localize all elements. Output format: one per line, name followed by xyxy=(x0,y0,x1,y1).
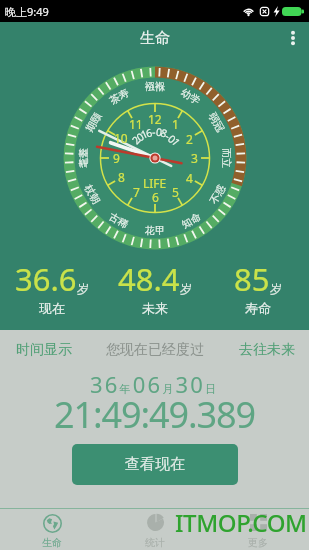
staticText: 1 xyxy=(169,135,184,149)
staticText: 10 xyxy=(114,130,128,146)
staticText: 杖朝 xyxy=(82,182,103,206)
staticText: 茶寿 xyxy=(107,86,131,107)
staticText: 时间显示 xyxy=(16,341,72,359)
staticText: 5 xyxy=(172,184,179,200)
staticText: 9 xyxy=(113,150,120,166)
staticText: LIFE xyxy=(143,175,167,191)
staticText: 耄耋 xyxy=(77,148,90,168)
staticText: 1 xyxy=(172,116,179,132)
staticText: 12 xyxy=(148,111,162,127)
staticText: 0 xyxy=(155,125,164,139)
staticText: - xyxy=(152,125,156,139)
staticText: 晚上9:49 xyxy=(5,4,49,19)
staticText: 4 xyxy=(186,170,193,186)
staticText: 6 xyxy=(152,189,159,205)
button[interactable]: 生命 xyxy=(0,509,103,550)
staticText: 花甲 xyxy=(145,224,165,237)
staticText: 不惑 xyxy=(207,182,228,206)
staticText: 21:49:49.389 xyxy=(54,390,256,439)
staticText: 查看现在 xyxy=(125,455,185,474)
staticText: 知命 xyxy=(179,210,203,231)
staticText: 85 xyxy=(234,258,270,300)
staticText: 8 xyxy=(159,125,170,141)
staticText: 期颐 xyxy=(83,110,104,134)
staticText: 48.4 xyxy=(118,258,180,300)
staticText: 岁 xyxy=(77,281,89,296)
staticText: 您现在已经度过 xyxy=(106,341,204,359)
staticText: 统计 xyxy=(145,536,165,549)
staticText: 2 xyxy=(186,131,193,147)
staticText: 岁 xyxy=(270,281,282,296)
staticText: 3 xyxy=(191,150,198,166)
staticText: 现在 xyxy=(39,300,65,316)
staticText: 未来 xyxy=(142,300,168,316)
staticText: 6 xyxy=(144,125,154,140)
staticText: 11 xyxy=(129,116,143,132)
staticText: 幼学 xyxy=(179,86,203,107)
staticText: 36.6 xyxy=(15,258,77,300)
staticText: 1 xyxy=(138,126,151,142)
button[interactable]: More options xyxy=(277,22,309,54)
staticText: 0 xyxy=(133,129,147,144)
button[interactable]: 查看现在 xyxy=(72,444,238,485)
staticText: ITMOP.COM xyxy=(175,506,307,539)
staticText: 生命 xyxy=(42,536,62,549)
staticText: 襁褓 xyxy=(145,80,165,93)
staticText: 寿命 xyxy=(245,300,271,316)
staticText: 而立 xyxy=(220,148,233,168)
staticText: 36年06月30日 xyxy=(90,369,219,399)
staticText: 岁 xyxy=(180,281,192,296)
staticText: 0 xyxy=(165,132,180,147)
staticText: 古稀 xyxy=(107,210,131,231)
staticText: 2 xyxy=(129,132,144,147)
button[interactable]: 统计 xyxy=(103,509,206,550)
button[interactable]: 去往未来 xyxy=(217,338,295,362)
staticText: 8 xyxy=(118,169,125,185)
staticText: 更多 xyxy=(248,536,268,549)
button[interactable]: 更多 xyxy=(206,509,309,550)
staticText: 弱冠 xyxy=(206,110,227,134)
staticText: 去往未来 xyxy=(239,341,295,359)
staticText: 生命 xyxy=(140,29,170,48)
staticText: - xyxy=(163,129,173,143)
staticText: 7 xyxy=(133,184,140,200)
button[interactable]: 时间显示 xyxy=(16,338,93,362)
